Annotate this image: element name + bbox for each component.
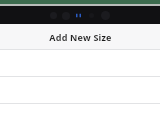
button[interactable]: Add New Size xyxy=(0,24,160,49)
button[interactable]: Menu xyxy=(50,12,57,19)
button[interactable]: Account xyxy=(101,11,110,20)
staticText: Add New Size xyxy=(49,31,112,43)
button[interactable]: Apps xyxy=(62,12,70,20)
button[interactable]: Status xyxy=(76,13,81,18)
